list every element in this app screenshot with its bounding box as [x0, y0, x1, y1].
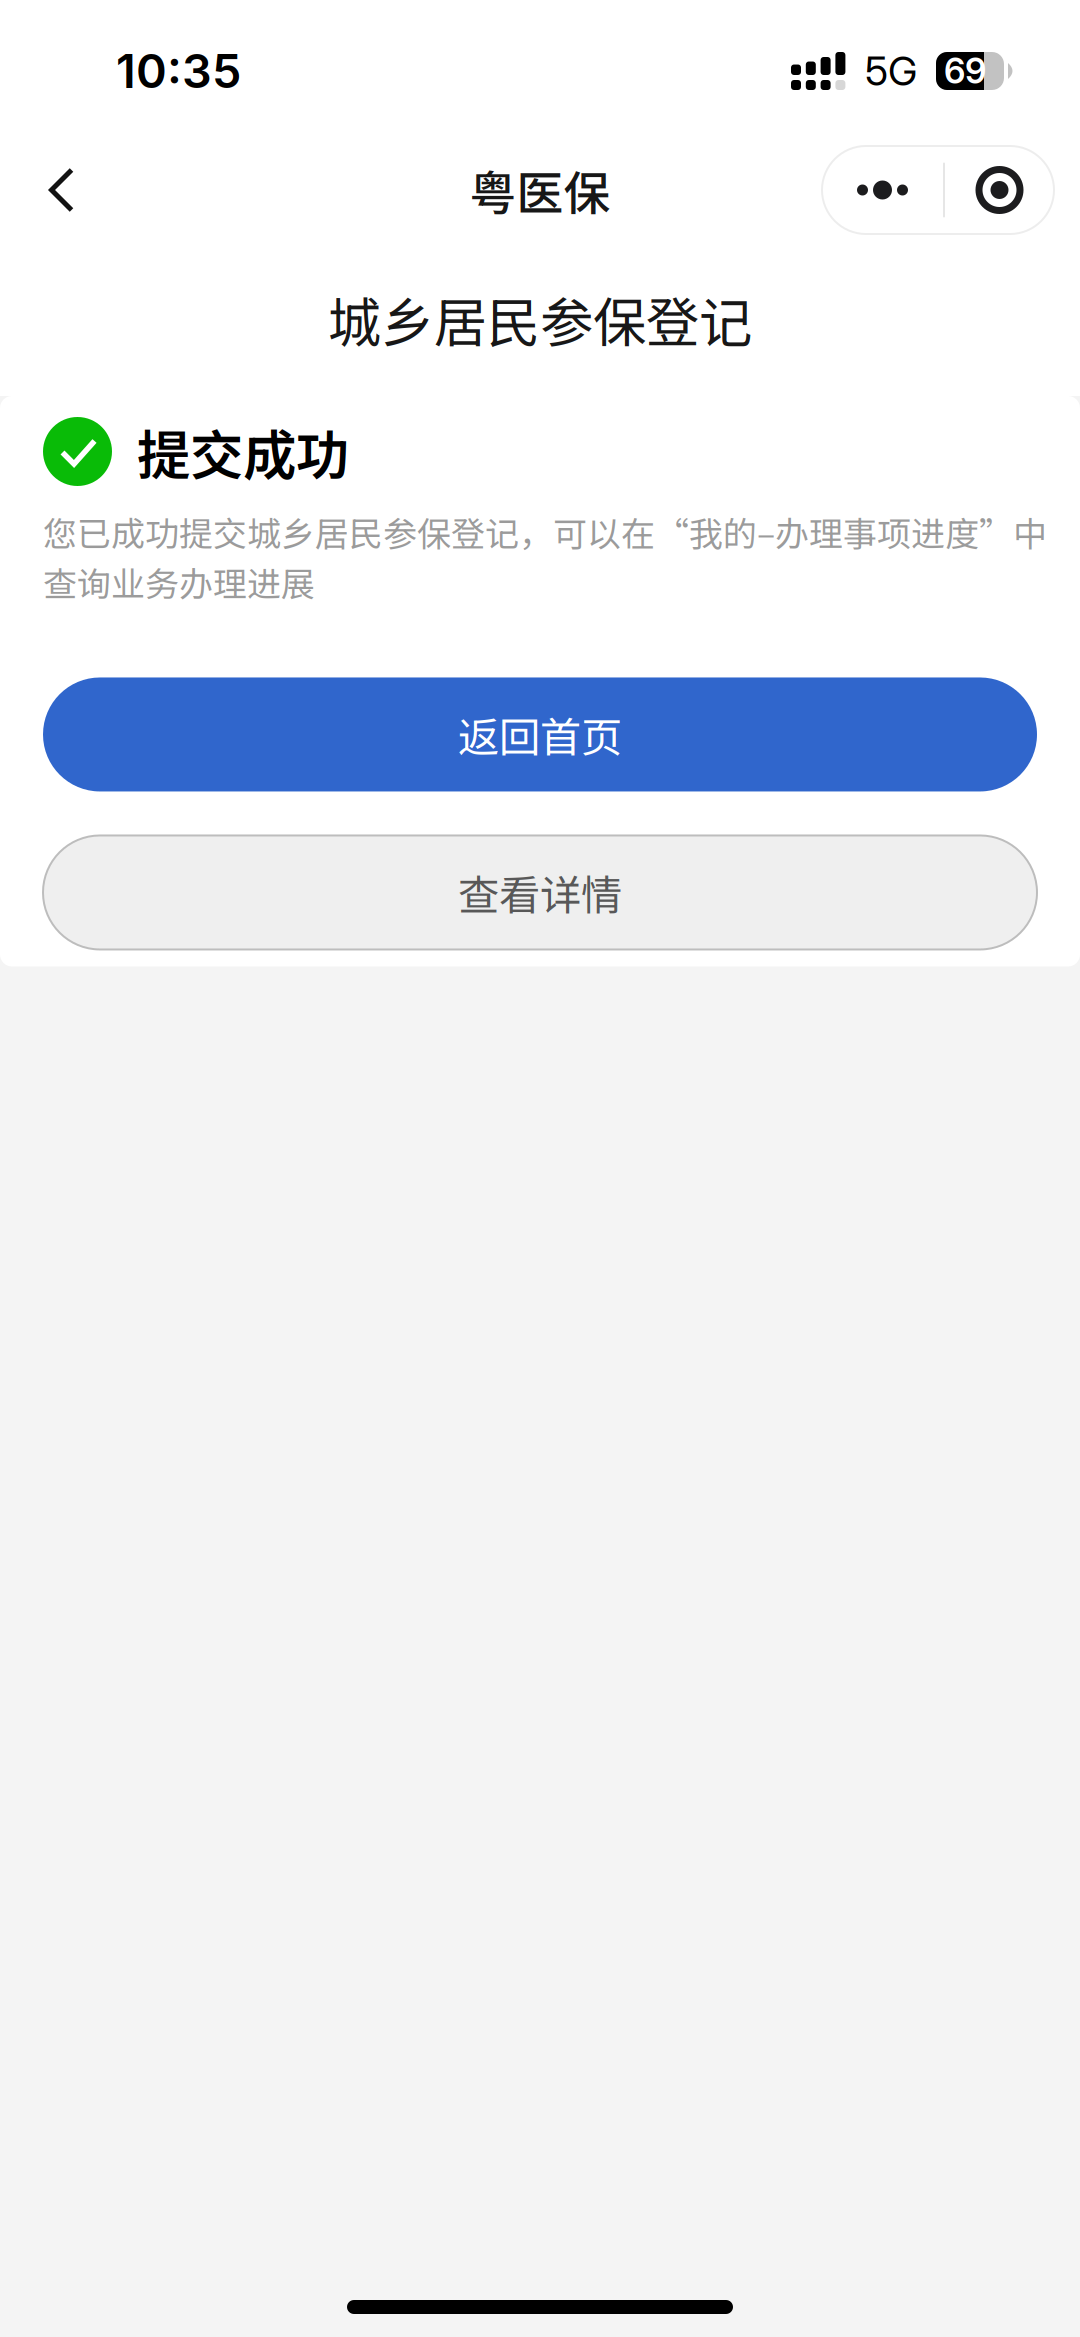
- staticText: 10:35: [116, 43, 241, 99]
- button[interactable]: 更多: [822, 146, 1054, 234]
- button[interactable]: 返回: [26, 142, 97, 238]
- staticText: 您已成功提交城乡居民参保登记，可以在“我的–办理事项进度”中: [43, 507, 1047, 556]
- staticText: 5G: [865, 47, 917, 95]
- button[interactable]: 查看详情: [43, 835, 1037, 949]
- staticText: 查询业务办理进展: [43, 557, 315, 606]
- staticText: 返回首页: [458, 704, 622, 764]
- staticText: 提交成功: [137, 413, 349, 490]
- button[interactable]: 返回首页: [43, 677, 1037, 791]
- staticText: 粤医保: [469, 156, 610, 224]
- staticText: 查看详情: [458, 862, 622, 922]
- staticText: 城乡居民参保登记: [328, 280, 752, 358]
- staticText: 69: [944, 50, 986, 92]
